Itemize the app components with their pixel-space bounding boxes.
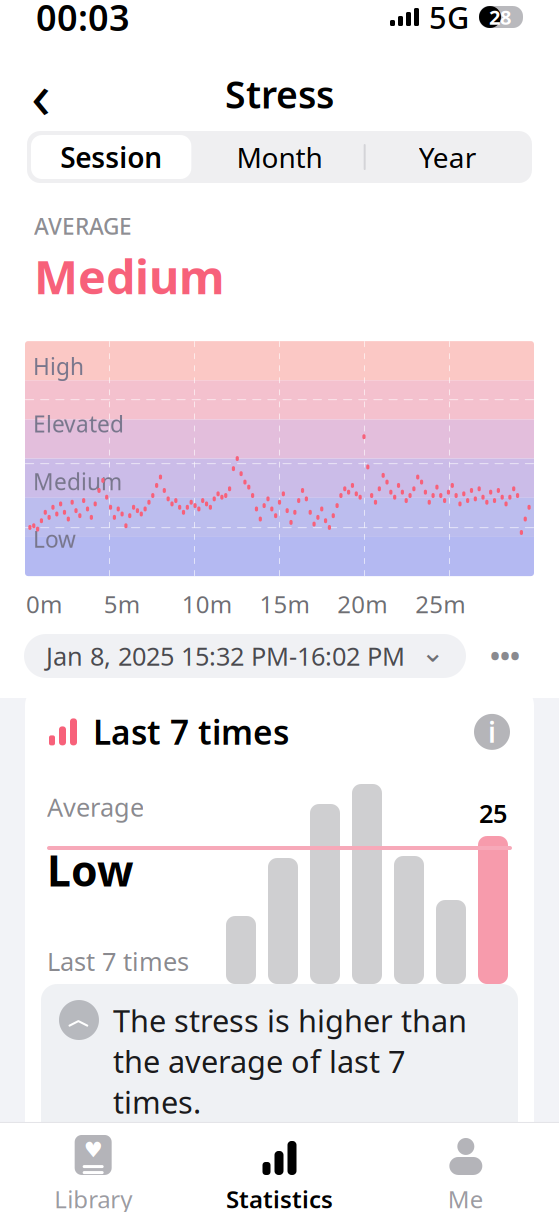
staticText: ︿	[67, 1006, 90, 1034]
staticText: 10m	[182, 588, 232, 620]
button[interactable]: Back	[12, 65, 70, 123]
staticText: Low	[47, 842, 134, 898]
staticText: Statistics	[226, 1183, 333, 1212]
button[interactable]: Me	[373, 1135, 559, 1212]
staticText: The stress is higher than the average of…	[113, 1000, 467, 1122]
staticText: Stress	[225, 69, 334, 119]
staticText: Session	[60, 138, 162, 176]
staticText: Library	[54, 1183, 132, 1212]
staticText: Month	[236, 138, 322, 176]
staticText: Me	[448, 1183, 484, 1212]
staticText: 25m	[415, 588, 465, 620]
staticText: Medium	[34, 245, 225, 307]
staticText: 15m	[259, 588, 309, 620]
staticText: ⌄	[421, 636, 444, 668]
staticText: 5m	[104, 588, 140, 620]
button[interactable]: Session	[27, 131, 195, 183]
staticText: ♥	[84, 1138, 103, 1162]
staticText: i	[488, 713, 496, 750]
button[interactable]: ♥	[0, 1135, 186, 1212]
staticText: 25	[479, 796, 507, 830]
staticText: ‹	[31, 51, 51, 136]
button[interactable]: Jan 8, 2025 15:32 PM-16:02 PM	[24, 634, 466, 678]
button[interactable]: Information	[474, 713, 510, 750]
staticText: High	[33, 351, 84, 381]
staticText: 20m	[337, 588, 387, 620]
staticText: 0m	[26, 588, 62, 620]
staticText: Elevated	[33, 409, 124, 439]
button[interactable]: Statistics	[186, 1135, 373, 1212]
staticText: Year	[419, 138, 477, 176]
staticText: Last 7 times	[93, 710, 289, 754]
staticText: Last 7 times	[47, 944, 189, 978]
staticText: Medium	[33, 466, 122, 496]
button[interactable]: More options	[475, 634, 535, 678]
staticText: AVERAGE	[34, 211, 132, 241]
staticText: Jan 8, 2025 15:32 PM-16:02 PM	[46, 639, 405, 673]
button[interactable]: Year	[364, 131, 532, 183]
staticText: 28	[489, 4, 511, 30]
staticText: Average	[47, 790, 144, 824]
staticText: Low	[33, 524, 76, 554]
staticText: 00:03	[36, 0, 130, 41]
button[interactable]: Month	[195, 131, 364, 183]
staticText: •••	[490, 638, 520, 674]
staticText: 5G	[429, 0, 469, 37]
